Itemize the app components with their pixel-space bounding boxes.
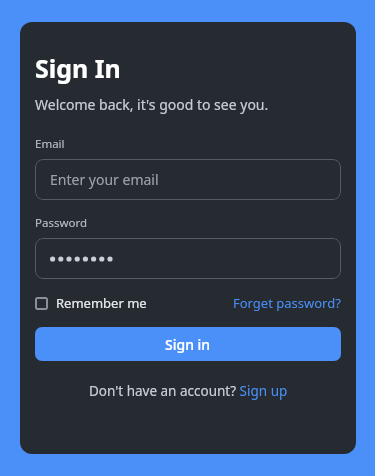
button[interactable]: Forget password? — [233, 291, 341, 315]
staticText: Welcome back, it's good to see you. — [35, 95, 269, 114]
button[interactable]: Don't have an account? Sign up — [85, 378, 292, 404]
staticText: Sign in — [165, 335, 211, 354]
staticText: Enter your email — [50, 170, 159, 189]
staticText: Password — [35, 215, 88, 231]
button[interactable]: Password input — [35, 238, 341, 279]
button[interactable]: Enter your email — [35, 159, 341, 200]
button[interactable]: Remember me — [35, 291, 147, 315]
staticText: Don't have an account? Sign up — [89, 382, 288, 400]
staticText: Email — [35, 136, 65, 152]
staticText: Forget password? — [233, 294, 341, 312]
button[interactable]: Sign in — [35, 327, 341, 361]
staticText: Sign In — [35, 51, 121, 85]
staticText: Remember me — [56, 294, 147, 312]
